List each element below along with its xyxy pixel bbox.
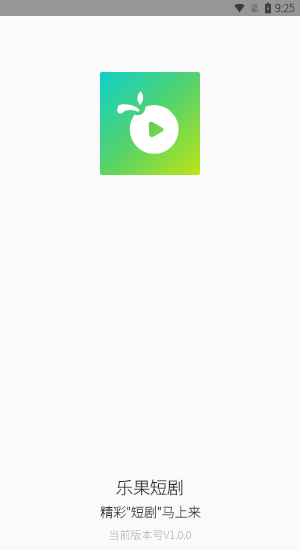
other: Battery charging xyxy=(264,2,272,14)
staticText: 乐果短剧 xyxy=(116,474,184,499)
staticText: 精彩"短剧"马上来 xyxy=(100,502,201,521)
staticText: 9:25 xyxy=(275,0,295,15)
other: Wi-Fi connected xyxy=(234,3,245,13)
staticText: 当前版本号V1.0.0 xyxy=(108,526,192,542)
other: No mobile signal xyxy=(250,3,260,13)
button[interactable]: 乐果短剧 app logo xyxy=(100,72,200,175)
